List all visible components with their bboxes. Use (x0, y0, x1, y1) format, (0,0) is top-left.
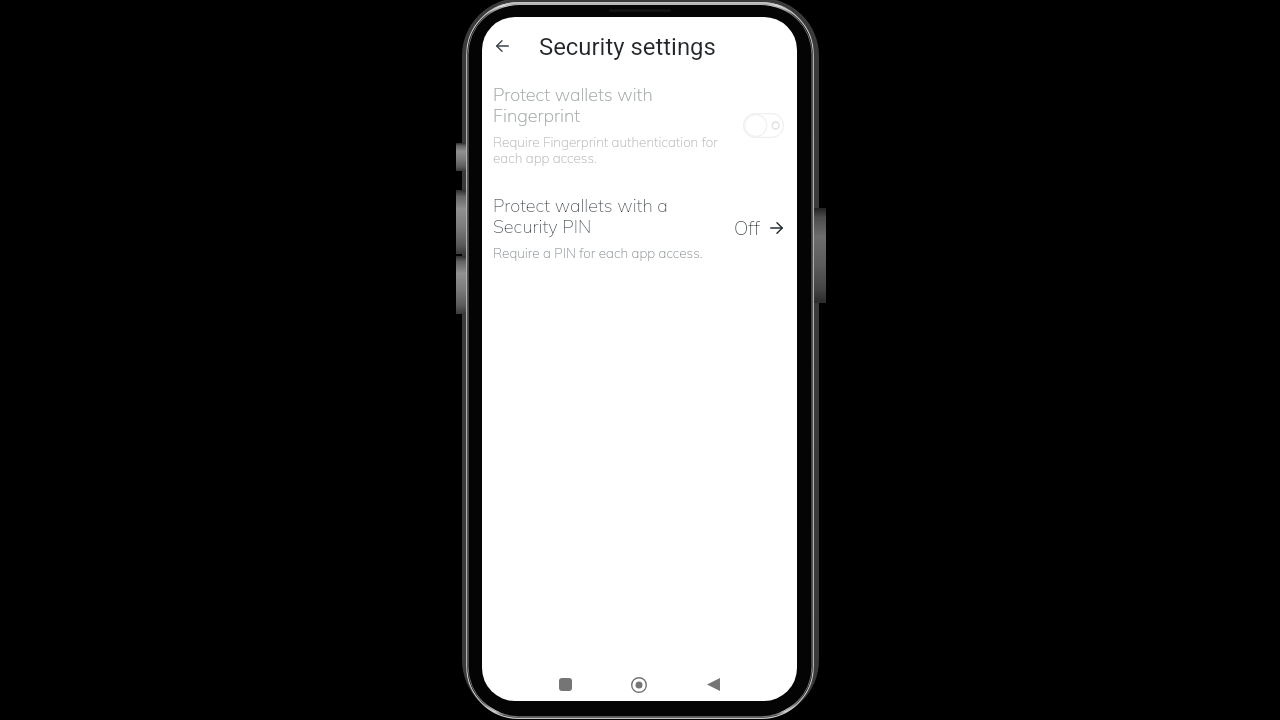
button[interactable]: Back (691, 665, 735, 701)
button[interactable]: Protect wallets with a Security PIN (482, 190, 797, 265)
staticText: Security settings (539, 33, 716, 61)
staticText: Protect wallets with a Security PIN (493, 194, 703, 238)
button[interactable]: Home (617, 665, 661, 701)
staticText: Require a PIN for each app access. (493, 244, 703, 261)
staticText: Protect wallets with Fingerprint (493, 83, 721, 127)
staticText: Require Fingerprint authentication for e… (493, 133, 721, 167)
button[interactable]: Protect wallets with Fingerprint (743, 113, 784, 138)
button[interactable]: Recent apps (543, 665, 587, 701)
button[interactable]: Protect wallets with Fingerprint (482, 79, 797, 171)
button[interactable]: Back (490, 34, 514, 58)
staticText: Off (734, 216, 760, 240)
